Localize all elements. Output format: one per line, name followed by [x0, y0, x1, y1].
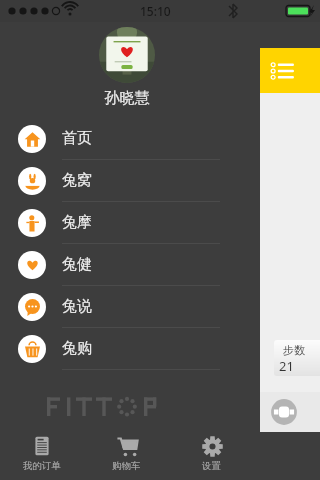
button[interactable]: 首页	[0, 118, 320, 160]
staticText: 孙晓慧	[0, 89, 287, 108]
button[interactable]: 步数	[274, 340, 320, 376]
staticText: 兔说	[62, 297, 92, 316]
button[interactable]: 兔窝	[0, 160, 320, 202]
button[interactable]: 我的订单	[0, 426, 84, 480]
button[interactable]: Profile photo	[99, 27, 155, 83]
staticText: 兔窝	[62, 171, 92, 190]
button[interactable]: Device	[270, 398, 298, 426]
button[interactable]: 兔说	[0, 286, 320, 328]
button[interactable]: 设置	[169, 426, 254, 480]
button[interactable]: 兔摩	[0, 202, 320, 244]
staticText: 15:10	[140, 3, 171, 19]
staticText: 步数	[283, 343, 305, 357]
staticText: 购物车	[112, 460, 141, 472]
staticText: 兔健	[62, 255, 92, 274]
staticText: 兔购	[62, 339, 92, 358]
staticText: 21	[279, 357, 294, 375]
button[interactable]: Menu	[270, 58, 296, 84]
staticText: 我的订单	[23, 460, 61, 472]
staticText: 设置	[202, 460, 221, 472]
button[interactable]: 兔健	[0, 244, 320, 286]
staticText: 兔摩	[62, 213, 92, 232]
staticText: 首页	[62, 129, 92, 148]
button[interactable]: 购物车	[84, 426, 169, 480]
button[interactable]: 兔购	[0, 328, 320, 370]
